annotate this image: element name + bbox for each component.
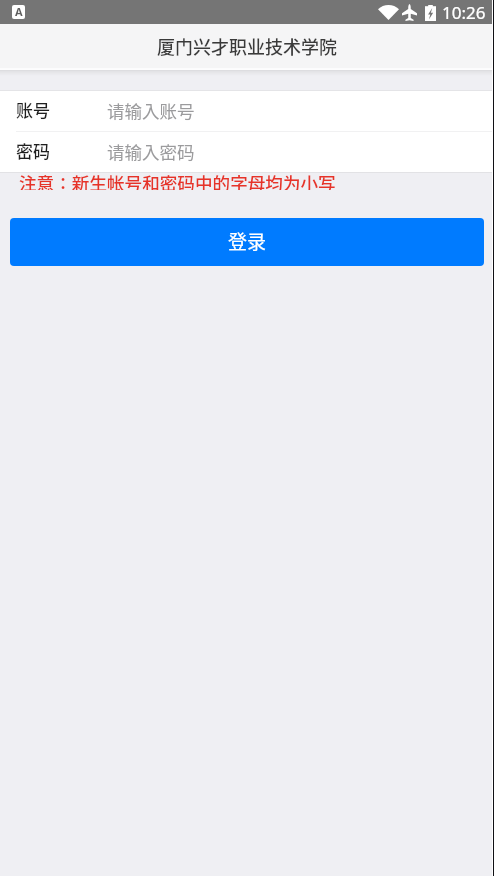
button[interactable]: 登录 [10, 218, 484, 266]
button[interactable]: 账号 [0, 91, 494, 131]
staticText: 注意：新生帐号和密码中的字母均为小写 [19, 170, 336, 190]
button[interactable]: 密码 [0, 132, 494, 172]
other: Wi-Fi signal [378, 5, 399, 20]
other: Battery charging [425, 5, 436, 21]
staticText: 请输入密码 [107, 139, 195, 164]
staticText: 请输入账号 [107, 98, 195, 123]
staticText: 账号 [16, 97, 107, 122]
staticText: 登录 [228, 227, 267, 255]
staticText: A [15, 5, 23, 18]
other: Airplane mode [402, 4, 417, 21]
staticText: 10:26 [442, 1, 486, 24]
staticText: 密码 [16, 138, 107, 163]
staticText: 厦门兴才职业技术学院 [157, 33, 337, 59]
button[interactable]: 厦门兴才职业技术学院 [0, 24, 494, 68]
